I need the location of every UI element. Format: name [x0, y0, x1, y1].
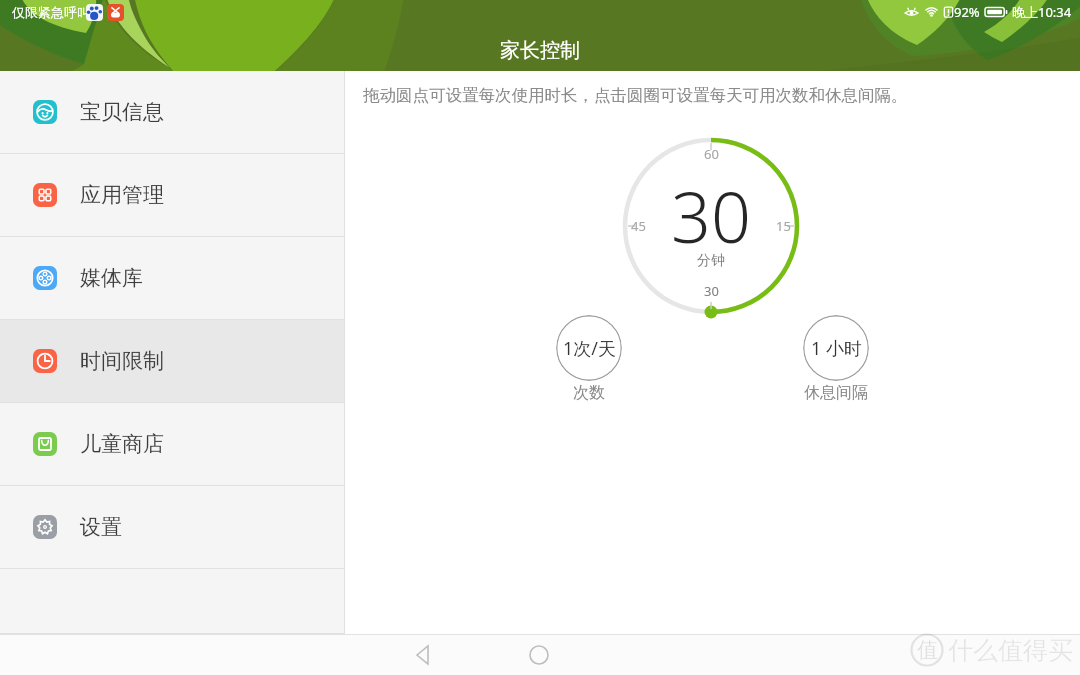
staticText: 30	[671, 168, 751, 263]
button[interactable]: 应用管理	[0, 154, 344, 236]
staticText: 家长控制	[500, 38, 580, 63]
staticText: 拖动圆点可设置每次使用时长，点击圆圈可设置每天可用次数和休息间隔。	[363, 85, 908, 106]
staticText: 1次/天	[563, 336, 616, 361]
button[interactable]: 1 小时	[803, 315, 869, 381]
staticText: 休息间隔	[804, 383, 868, 403]
button[interactable]: Home	[519, 635, 559, 675]
staticText: 时间限制	[80, 348, 164, 374]
button[interactable]: 媒体库	[0, 237, 344, 319]
button[interactable]: 儿童商店	[0, 403, 344, 485]
button[interactable]: Back	[403, 635, 443, 675]
staticText: 设置	[80, 514, 122, 540]
button[interactable]: Time dial	[618, 133, 804, 319]
staticText: 晚上10:34	[1012, 3, 1072, 21]
staticText: 媒体库	[80, 265, 143, 291]
staticText: 值	[917, 637, 938, 663]
staticText: 15	[776, 217, 791, 235]
button[interactable]: 1次/天	[556, 315, 622, 381]
staticText: 什么值得买	[948, 635, 1073, 666]
staticText: 仅限紧急呼叫	[12, 4, 90, 20]
staticText: 92%	[954, 3, 980, 21]
staticText: 宝贝信息	[80, 99, 164, 125]
staticText: 60	[704, 145, 719, 163]
button[interactable]: 设置	[0, 486, 344, 568]
staticText: 儿童商店	[80, 431, 164, 457]
staticText: 1 小时	[811, 336, 862, 361]
button[interactable]: 宝贝信息	[0, 71, 344, 153]
staticText: 应用管理	[80, 182, 164, 208]
button[interactable]: 时间限制	[0, 320, 344, 402]
staticText: 45	[631, 217, 646, 235]
staticText: 次数	[573, 383, 605, 403]
staticText: 30	[704, 282, 719, 300]
staticText: 分钟	[697, 252, 725, 270]
